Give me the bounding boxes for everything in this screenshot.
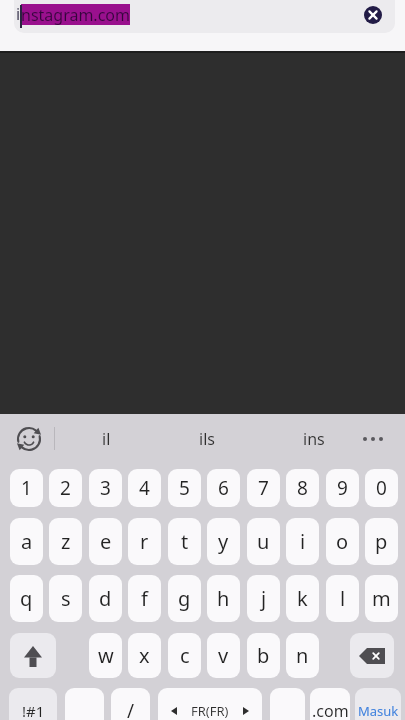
button[interactable]: j	[247, 575, 280, 622]
button[interactable]: 2	[49, 469, 82, 507]
staticText: 7	[258, 475, 269, 501]
staticText: 2	[60, 475, 71, 501]
staticText: 5	[179, 475, 190, 501]
button[interactable]: z	[49, 518, 82, 565]
staticText: e	[100, 528, 112, 555]
button[interactable]: .com	[310, 688, 350, 720]
button[interactable]: r	[128, 518, 161, 565]
button[interactable]: il	[76, 424, 136, 453]
button[interactable]: ,	[65, 688, 104, 720]
button[interactable]	[10, 633, 56, 678]
staticText: g	[178, 585, 191, 612]
button[interactable]: b	[247, 633, 280, 678]
button[interactable]: 8	[286, 469, 319, 507]
button[interactable]: h	[207, 575, 240, 622]
button[interactable]: d	[89, 575, 122, 622]
button[interactable]: .	[270, 688, 305, 720]
staticText: m	[372, 585, 391, 612]
staticText: i	[16, 3, 21, 25]
staticText: 9	[337, 475, 348, 501]
button[interactable]: /	[111, 688, 150, 720]
staticText: h	[217, 585, 230, 612]
staticText: k	[297, 585, 308, 612]
button[interactable]	[14, 0, 395, 33]
button[interactable]: ins	[284, 424, 344, 453]
staticText: .com	[312, 700, 349, 720]
staticText: q	[20, 585, 33, 612]
staticText: ins	[303, 428, 325, 450]
staticText: /	[127, 698, 135, 720]
button[interactable]: 5	[168, 469, 201, 507]
staticText: c	[180, 642, 190, 669]
button[interactable]: p	[365, 518, 398, 565]
button[interactable]: e	[89, 518, 122, 565]
staticText: y	[218, 528, 229, 555]
button[interactable]: n	[286, 633, 319, 678]
button[interactable]: Masuk	[355, 688, 401, 720]
staticText: il	[102, 428, 111, 450]
button[interactable]: v	[207, 633, 240, 678]
button[interactable]: i	[286, 518, 319, 565]
staticText: Masuk	[358, 702, 399, 720]
button[interactable]: ils	[177, 424, 237, 453]
button[interactable]: 7	[247, 469, 280, 507]
staticText: d	[99, 585, 112, 612]
button[interactable]: 3	[89, 469, 122, 507]
button[interactable]	[350, 633, 394, 678]
staticText: x	[139, 642, 150, 669]
button[interactable]: l	[326, 575, 359, 622]
staticText: 8	[297, 475, 308, 501]
button[interactable]: 9	[326, 469, 359, 507]
staticText: w	[98, 642, 114, 669]
staticText: u	[257, 528, 270, 555]
staticText: f	[141, 585, 148, 612]
button[interactable]: 4	[128, 469, 161, 507]
staticText: v	[218, 642, 229, 669]
staticText: 1	[21, 475, 32, 501]
button[interactable]: f	[128, 575, 161, 622]
staticText: o	[336, 528, 349, 555]
button[interactable]: t	[168, 518, 201, 565]
staticText: 0	[376, 475, 387, 501]
button[interactable]: k	[286, 575, 319, 622]
staticText: ils	[199, 428, 215, 450]
button[interactable]: 1	[10, 469, 43, 507]
button[interactable]: o	[326, 518, 359, 565]
button[interactable]: m	[365, 575, 398, 622]
staticText: i	[300, 528, 306, 555]
button[interactable]: c	[168, 633, 201, 678]
button[interactable]: s	[49, 575, 82, 622]
button[interactable]: FR(FR)	[158, 688, 262, 720]
button[interactable]: a	[10, 518, 43, 565]
staticText: !#1	[22, 701, 45, 720]
staticText: s	[61, 585, 71, 612]
staticText: nstagram.com	[21, 4, 130, 25]
button[interactable]: g	[168, 575, 201, 622]
button[interactable]: u	[247, 518, 280, 565]
button[interactable]: 0	[365, 469, 398, 507]
button[interactable]	[360, 428, 386, 448]
button[interactable]: 6	[207, 469, 240, 507]
staticText: l	[340, 585, 346, 612]
button[interactable]	[364, 6, 382, 24]
staticText: b	[257, 642, 270, 669]
staticText: z	[61, 528, 71, 555]
staticText: 3	[100, 475, 111, 501]
button[interactable]: w	[89, 633, 122, 678]
button[interactable]: y	[207, 518, 240, 565]
staticText: p	[375, 528, 388, 555]
staticText: FR(FR)	[191, 702, 229, 720]
staticText: t	[181, 528, 189, 555]
staticText: r	[140, 528, 149, 555]
staticText: j	[261, 585, 267, 612]
button[interactable]: x	[128, 633, 161, 678]
staticText: n	[296, 642, 309, 669]
button[interactable]: !#1	[9, 688, 57, 720]
button[interactable]: q	[10, 575, 43, 622]
staticText: 4	[139, 475, 150, 501]
staticText: a	[21, 528, 33, 555]
button[interactable]	[15, 425, 43, 453]
staticText: 6	[218, 475, 229, 501]
